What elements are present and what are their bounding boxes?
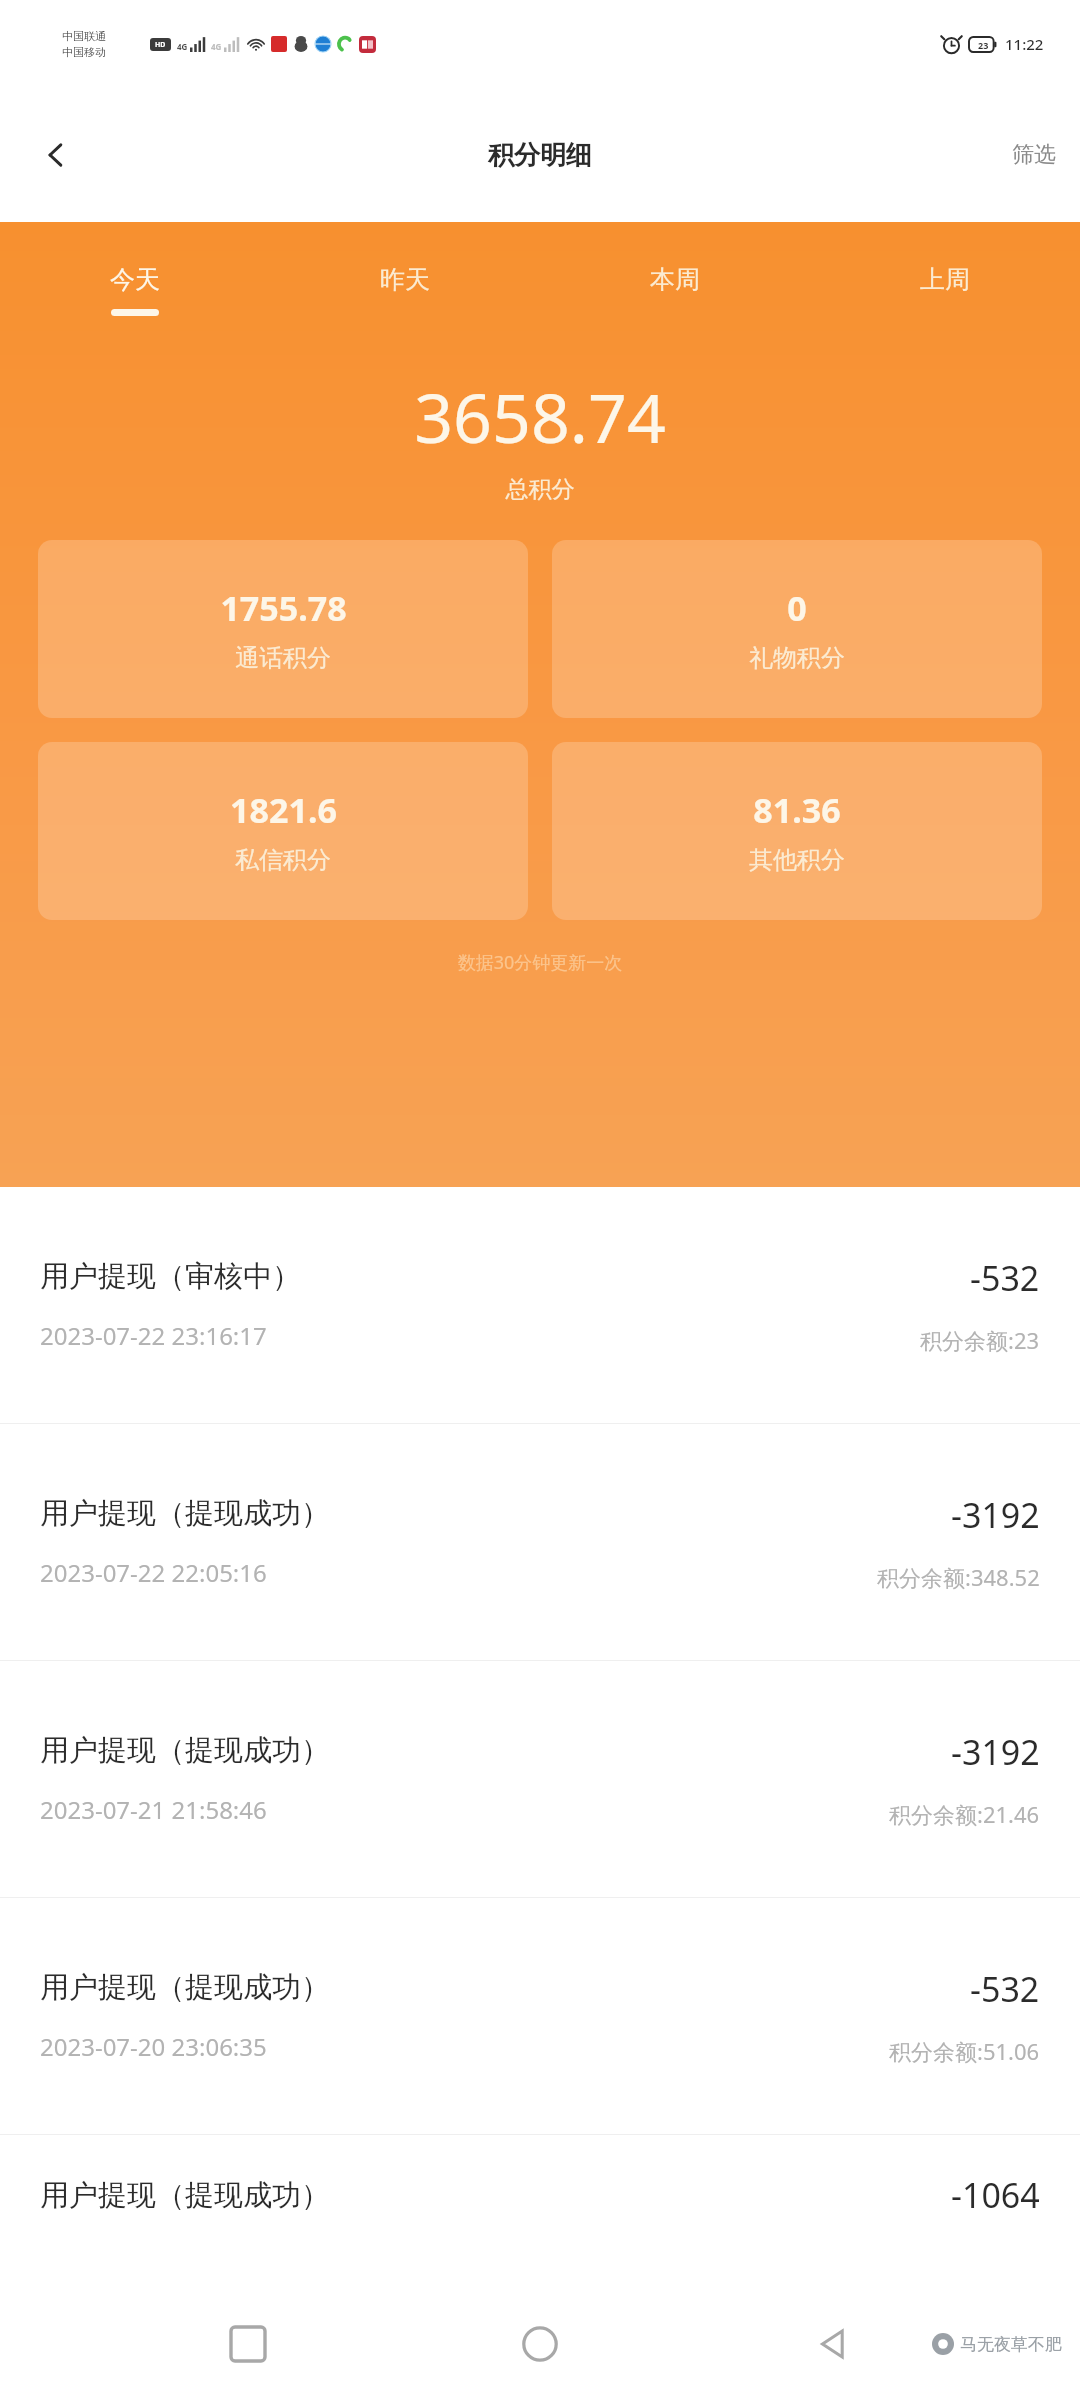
staticText: 上周 (920, 264, 970, 295)
staticText: 数据30分钟更新一次 (0, 950, 1080, 975)
button[interactable]: Back (788, 2300, 876, 2388)
button[interactable]: Back (20, 119, 92, 191)
staticText: 11:22 (1005, 34, 1044, 54)
button[interactable]: 1821.6 (38, 742, 528, 920)
staticText: 1821.6 (230, 787, 337, 833)
staticText: 4G (177, 41, 188, 52)
button[interactable]: 用户提现（提现成功） (0, 1661, 1080, 1898)
staticText: 本周 (650, 264, 700, 295)
staticText: 通话积分 (235, 643, 331, 673)
staticText: 用户提现（提现成功） (40, 1495, 330, 1532)
staticText: 81.36 (753, 787, 841, 833)
staticText: 筛选 (1012, 141, 1056, 169)
staticText: 昨天 (380, 264, 430, 295)
button[interactable]: Home (496, 2300, 584, 2388)
staticText: 2023-07-22 22:05:16 (40, 1556, 267, 1589)
staticText: 其他积分 (749, 845, 845, 875)
button[interactable]: 81.36 (552, 742, 1042, 920)
staticText: 3658.74 (0, 370, 1080, 463)
staticText: 2023-07-20 23:06:35 (40, 2030, 267, 2063)
button[interactable]: 用户提现（提现成功） (0, 2135, 1080, 2255)
staticText: 积分余额:23 (920, 1325, 1040, 1355)
staticText: 用户提现（审核中） (40, 1258, 301, 1295)
button[interactable]: 0 (552, 540, 1042, 718)
staticText: 用户提现（提现成功） (40, 2177, 330, 2214)
button[interactable]: Recents (204, 2300, 292, 2388)
staticText: 积分余额:51.06 (889, 2036, 1040, 2066)
staticText: 1755.78 (220, 585, 347, 631)
staticText: 积分余额:21.46 (889, 1799, 1040, 1829)
staticText: 积分明细 (488, 139, 592, 172)
button[interactable]: 筛选 (988, 125, 1080, 185)
staticText: 礼物积分 (749, 643, 845, 673)
button[interactable]: 1755.78 (38, 540, 528, 718)
staticText: HD (155, 40, 166, 50)
staticText: -532 (970, 1966, 1040, 2012)
button[interactable]: 用户提现（提现成功） (0, 1424, 1080, 1661)
staticText: 用户提现（提现成功） (40, 1732, 330, 1769)
staticText: 23 (978, 39, 989, 51)
staticText: 用户提现（提现成功） (40, 1969, 330, 2006)
staticText: -3192 (951, 1729, 1040, 1775)
staticText: 2023-07-21 21:58:46 (40, 1793, 267, 1826)
staticText: 马无夜草不肥 (960, 2334, 1062, 2355)
staticText: 0 (787, 585, 807, 631)
staticText: 今天 (110, 264, 160, 295)
staticText: 4G (211, 41, 222, 52)
button[interactable]: 用户提现（审核中） (0, 1187, 1080, 1424)
staticText: 总积分 (0, 475, 1080, 504)
staticText: -532 (970, 1255, 1040, 1301)
staticText: 中国联通 (62, 29, 106, 43)
staticText: 私信积分 (235, 845, 331, 875)
button[interactable]: 用户提现（提现成功） (0, 1898, 1080, 2135)
staticText: -1064 (951, 2172, 1040, 2218)
button[interactable]: 本周 (540, 258, 810, 322)
button[interactable]: 昨天 (270, 258, 540, 322)
staticText: -3192 (951, 1492, 1040, 1538)
staticText: 积分余额:348.52 (877, 1562, 1040, 1592)
button[interactable]: 今天 (0, 258, 270, 322)
button[interactable]: 上周 (810, 258, 1080, 322)
staticText: 中国移动 (62, 45, 106, 59)
staticText: 2023-07-22 23:16:17 (40, 1319, 267, 1352)
